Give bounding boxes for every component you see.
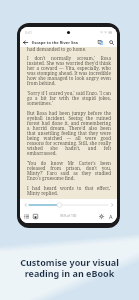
button[interactable]: Bookmarks: [31, 211, 40, 221]
button[interactable]: Contents: [22, 211, 31, 221]
button[interactable]: Font size: [106, 211, 115, 221]
button[interactable]: Next page: [108, 200, 115, 210]
staticText: A: [109, 213, 113, 220]
button[interactable]: Previous page: [22, 200, 29, 210]
button[interactable]: Back: [20, 37, 31, 47]
staticText: I had heard words to that effect,' Minty…: [27, 185, 111, 197]
staticText: 96% of 100: [60, 214, 77, 218]
button[interactable]: Display options: [95, 37, 106, 47]
staticText: Customise your visual reading in an eBoo…: [20, 256, 119, 280]
staticText: 'You do know Mr Carter's been released f…: [27, 160, 111, 182]
staticText: had demanded to go home.: [27, 46, 87, 52]
staticText: 9:41: [25, 30, 32, 35]
staticText: 'Sorry if I scared you,' said Enzo. 'I c…: [27, 90, 111, 107]
button[interactable]: Search: [106, 37, 117, 47]
staticText: Escape to the River Sea: [32, 40, 79, 45]
button[interactable]: Brightness: [97, 211, 106, 221]
staticText: But Rosa had been jumpy before the eyeba…: [27, 110, 111, 157]
staticText: I don't normally scream,' Rosa insisted.…: [27, 55, 111, 87]
